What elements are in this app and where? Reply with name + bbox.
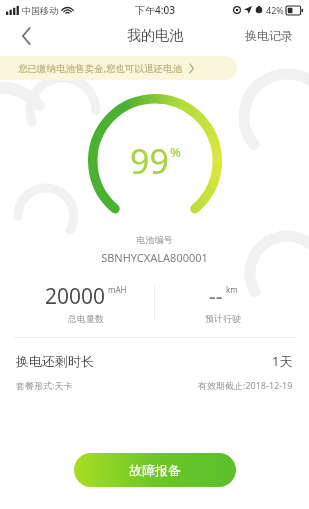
staticText: 换电记录: [245, 28, 293, 43]
staticText: SBNHYCXALA800001: [0, 250, 309, 265]
button[interactable]: Back: [12, 22, 40, 50]
staticText: 我的电池: [127, 27, 183, 45]
staticText: --: [209, 282, 223, 311]
button[interactable]: 您已缴纳电池售卖金,您也可以退还电池: [0, 56, 237, 80]
staticText: 42%: [266, 4, 284, 16]
staticText: 套餐形式:天卡: [16, 379, 73, 391]
button[interactable]: 故障报备: [74, 453, 236, 487]
staticText: 有效期截止:2018-12-19: [198, 379, 293, 391]
staticText: 预计行驶: [205, 313, 241, 324]
staticText: 下午4:03: [135, 3, 175, 17]
staticText: km: [226, 284, 238, 295]
staticText: 电池编号: [0, 234, 309, 245]
staticText: 总电量数: [68, 313, 104, 324]
staticText: 故障报备: [129, 462, 181, 478]
staticText: 20000: [45, 282, 106, 311]
staticText: 换电还剩时长: [16, 353, 94, 369]
staticText: mAH: [108, 284, 127, 295]
staticText: 中国移动: [22, 5, 58, 16]
staticText: 您已缴纳电池售卖金,您也可以退还电池: [18, 62, 183, 75]
staticText: 99: [130, 138, 169, 184]
button[interactable]: 换电记录: [245, 28, 293, 43]
staticText: 1天: [272, 352, 293, 370]
staticText: %: [170, 143, 181, 161]
button[interactable]: 换电还剩时长: [0, 352, 309, 391]
